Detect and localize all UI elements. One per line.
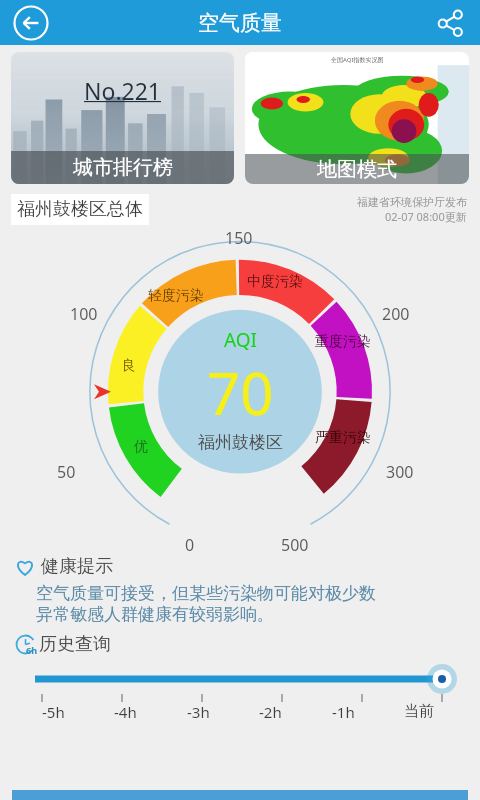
staticText: 空气质量可接受，但某些污染物可能对极少数 [36,583,376,604]
staticText: -2h [259,702,282,722]
staticText: -4h [114,702,137,722]
button[interactable] [0,667,480,691]
staticText: 地图模式 [317,157,397,182]
staticText: 历史查询 [39,633,111,656]
button[interactable]: No.221 [11,52,234,184]
staticText: 空气质量 [198,10,282,36]
button[interactable]: Share [436,9,464,37]
staticText: 50 [57,461,76,483]
staticText: 300 [386,461,414,483]
staticText: 轻度污染 [148,287,204,305]
staticText: 重度污染 [315,333,371,351]
staticText: 0 [185,534,195,556]
staticText: 70 [207,353,274,432]
staticText: 150 [225,227,253,249]
staticText: 500 [281,534,309,556]
staticText: 良 [122,357,136,375]
staticText: 优 [134,438,148,456]
staticText: 严重污染 [315,429,371,447]
button[interactable]: 福州鼓楼区总体 [17,198,143,221]
staticText: 当前 [404,702,434,721]
staticText: 6h [26,644,37,656]
staticText: -5h [42,702,65,722]
staticText: 异常敏感人群健康有较弱影响。 [36,604,274,625]
button[interactable]: 全国AQI指数实况图 [245,52,469,184]
staticText: 200 [382,303,410,325]
staticText: 福州鼓楼区 [198,432,283,453]
staticText: 100 [70,303,98,325]
staticText: 全国AQI指数实况图 [331,56,384,64]
staticText: No.221 [84,75,162,106]
button[interactable]: Back [12,4,50,42]
staticText: 福建省环境保护厅发布 [357,195,467,209]
staticText: 健康提示 [41,555,113,578]
staticText: 02-07 08:00更新 [385,209,467,224]
staticText: -1h [332,702,355,722]
staticText: 福州鼓楼区总体 [17,198,143,221]
staticText: 中度污染 [247,273,303,291]
staticText: -3h [187,702,210,722]
staticText: 城市排行榜 [73,155,173,180]
staticText: AQI [224,327,258,353]
